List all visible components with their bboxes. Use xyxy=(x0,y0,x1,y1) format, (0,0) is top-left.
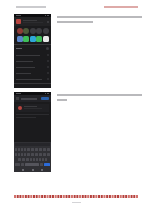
button[interactable] xyxy=(18,106,47,110)
button[interactable] xyxy=(30,28,36,34)
button[interactable] xyxy=(36,36,42,42)
button[interactable] xyxy=(36,28,42,34)
button[interactable] xyxy=(23,36,29,42)
button[interactable] xyxy=(17,36,23,42)
button[interactable] xyxy=(43,28,49,34)
button[interactable] xyxy=(16,66,49,68)
button[interactable]: Enter xyxy=(44,163,50,166)
button[interactable] xyxy=(23,28,29,34)
button[interactable] xyxy=(16,19,49,24)
button[interactable] xyxy=(17,28,23,34)
button[interactable] xyxy=(30,36,36,42)
button[interactable] xyxy=(16,72,49,74)
button[interactable] xyxy=(16,60,49,62)
button[interactable] xyxy=(16,54,49,56)
button[interactable] xyxy=(41,97,49,100)
button[interactable] xyxy=(43,36,49,42)
button[interactable] xyxy=(16,78,49,80)
